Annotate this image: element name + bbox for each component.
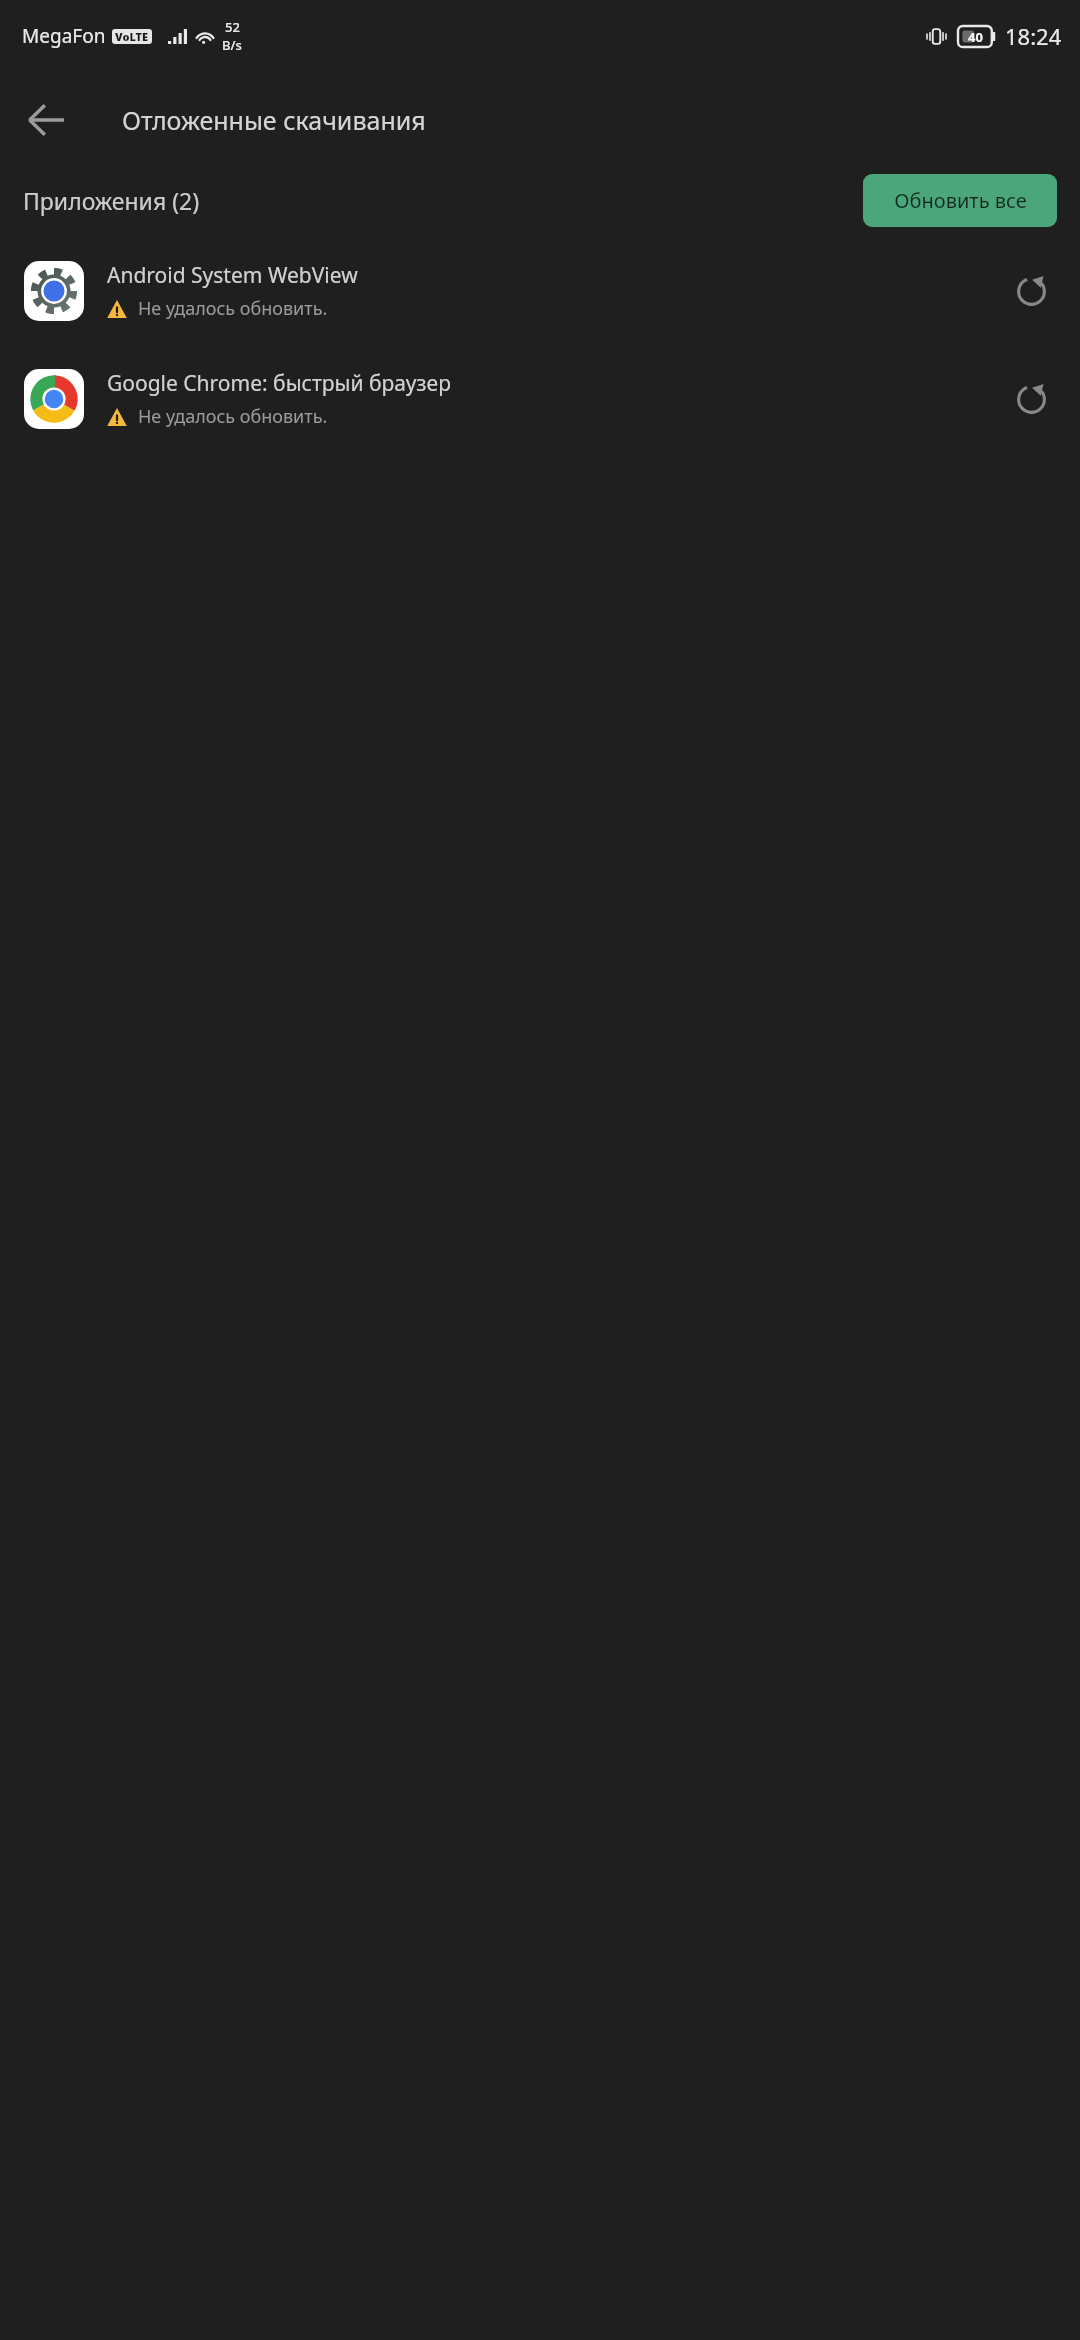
staticText: 52 xyxy=(225,18,240,36)
staticText: Не удалось обновить. xyxy=(138,404,328,429)
button[interactable]: Google Chrome: быстрый браузер xyxy=(0,356,1080,442)
staticText: MegaFon xyxy=(22,23,106,49)
button[interactable]: Повторить xyxy=(996,256,1066,326)
staticText: B/s xyxy=(222,36,242,54)
staticText: 18:24 xyxy=(1005,21,1062,51)
button[interactable]: Повторить xyxy=(996,364,1066,434)
staticText: Не удалось обновить. xyxy=(138,296,328,321)
button[interactable]: Android System WebView xyxy=(0,248,1080,334)
staticText: Приложения (2) xyxy=(23,185,200,216)
staticText: Отложенные скачивания xyxy=(122,103,426,137)
staticText: 40 xyxy=(968,28,983,46)
staticText: Обновить все xyxy=(894,187,1027,214)
staticText: Android System WebView xyxy=(107,261,358,290)
button[interactable]: Обновить все xyxy=(863,174,1057,227)
staticText: Google Chrome: быстрый браузер xyxy=(107,369,451,398)
staticText: VoLTE xyxy=(115,29,149,44)
button[interactable]: Назад xyxy=(8,82,84,158)
